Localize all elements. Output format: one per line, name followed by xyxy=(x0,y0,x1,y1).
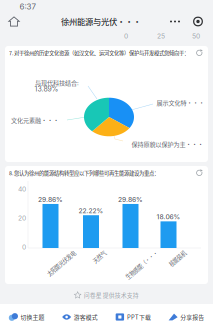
staticText: 22.22% xyxy=(78,207,103,215)
staticText: PPT下载 xyxy=(127,313,151,321)
staticText: 25 xyxy=(157,32,165,40)
staticText: 问卷星 提供技术支持 xyxy=(84,291,139,299)
button[interactable]: Close xyxy=(190,14,205,28)
staticText: 40 xyxy=(18,185,26,193)
staticText: 6:37 xyxy=(19,2,36,11)
button[interactable]: 分享报告 xyxy=(160,304,213,330)
staticText: 分享报告 xyxy=(180,313,204,321)
staticText: 太阳能光伏发电 xyxy=(37,249,72,257)
staticText: 20 xyxy=(18,214,26,222)
staticText: 7. 对于徐州的历史文化资源（如汉文化、运河文化等）保护与开发模式您倾向于： xyxy=(9,49,189,57)
staticText: 保持原貌以保护为主··· xyxy=(131,140,203,148)
staticText: 切换主题 xyxy=(20,313,44,321)
staticText: 徐州能源与光伏··· xyxy=(61,15,141,27)
staticText: 游客模式 xyxy=(74,313,98,321)
staticText: 展示文化特··· xyxy=(156,98,204,107)
staticText: 文化元素融··· xyxy=(11,116,59,124)
button[interactable]: 切换主题 xyxy=(0,304,53,330)
staticText: 8. 您认为徐州的能源结构转型应以下列哪些可再生能源建设为重点： xyxy=(9,169,159,177)
button[interactable]: Home xyxy=(5,13,23,29)
button[interactable]: PPT下载 xyxy=(106,304,160,330)
staticText: 13.89% xyxy=(34,85,58,93)
staticText: 29.86% xyxy=(38,195,63,203)
staticText: 18.06% xyxy=(156,213,180,221)
staticText: 天然气 xyxy=(87,249,102,257)
button[interactable]: More xyxy=(166,14,184,28)
staticText: 生物质能（··· xyxy=(114,249,154,257)
staticText: 与现代科技结合: xyxy=(35,78,79,87)
button[interactable]: Refresh xyxy=(196,49,203,56)
staticText: 29.86% xyxy=(118,195,143,203)
button[interactable]: Refresh xyxy=(196,169,203,176)
staticText: 0 xyxy=(22,243,26,251)
staticText: 0 xyxy=(124,32,128,40)
button[interactable]: 游客模式 xyxy=(53,304,106,330)
staticText: 核能装机 xyxy=(162,249,182,257)
staticText: 50 xyxy=(192,32,200,40)
